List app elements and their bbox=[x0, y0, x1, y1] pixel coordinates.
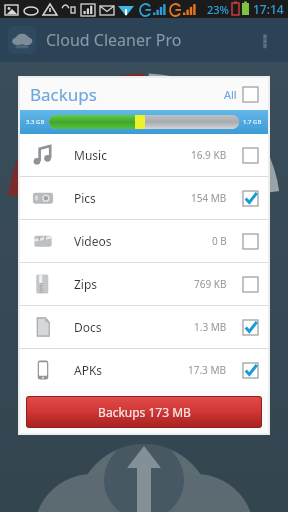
button[interactable]: Docs bbox=[20, 306, 268, 348]
staticText: 3.3 GB bbox=[26, 118, 45, 126]
button[interactable]: Checked bbox=[243, 191, 258, 206]
button[interactable]: Unchecked bbox=[243, 277, 258, 292]
staticText: All bbox=[224, 87, 237, 102]
staticText: 23% bbox=[207, 2, 229, 17]
button[interactable]: Checked bbox=[243, 363, 258, 378]
staticText: Pics bbox=[74, 190, 96, 206]
button[interactable]: Unchecked bbox=[243, 148, 258, 163]
staticText: 17.3 MB bbox=[188, 363, 227, 377]
staticText: Music bbox=[74, 147, 107, 163]
staticText: Cloud Cleaner Pro bbox=[46, 29, 182, 51]
button[interactable]: Checked bbox=[243, 320, 258, 335]
staticText: Zips bbox=[74, 276, 98, 292]
staticText: 17:14 bbox=[253, 1, 284, 17]
staticText: 154 MB bbox=[191, 191, 227, 205]
staticText: Backups 173 MB bbox=[98, 404, 191, 420]
button[interactable]: Zips bbox=[20, 263, 268, 305]
staticText: 1.7 GB bbox=[243, 118, 262, 126]
staticText: Videos bbox=[74, 233, 112, 249]
staticText: Docs bbox=[74, 319, 102, 335]
staticText: 16.9 KB bbox=[191, 148, 227, 162]
button[interactable]: Videos bbox=[20, 220, 268, 262]
staticText: APKs bbox=[74, 362, 103, 378]
button[interactable]: All bbox=[224, 87, 258, 102]
button[interactable]: App icon bbox=[8, 26, 36, 54]
staticText: 1.3 MB bbox=[194, 320, 227, 334]
button[interactable]: More options bbox=[250, 25, 280, 55]
staticText: 769 KB bbox=[194, 277, 227, 291]
staticText: 0 B bbox=[212, 234, 227, 248]
button[interactable]: Unchecked bbox=[243, 87, 258, 102]
button[interactable]: Music bbox=[20, 134, 268, 176]
button[interactable]: Unchecked bbox=[243, 234, 258, 249]
button[interactable]: Backups 173 MB bbox=[27, 397, 261, 427]
button[interactable]: APKs bbox=[20, 349, 268, 391]
staticText: Backups bbox=[30, 83, 97, 106]
button[interactable]: Pics bbox=[20, 177, 268, 219]
